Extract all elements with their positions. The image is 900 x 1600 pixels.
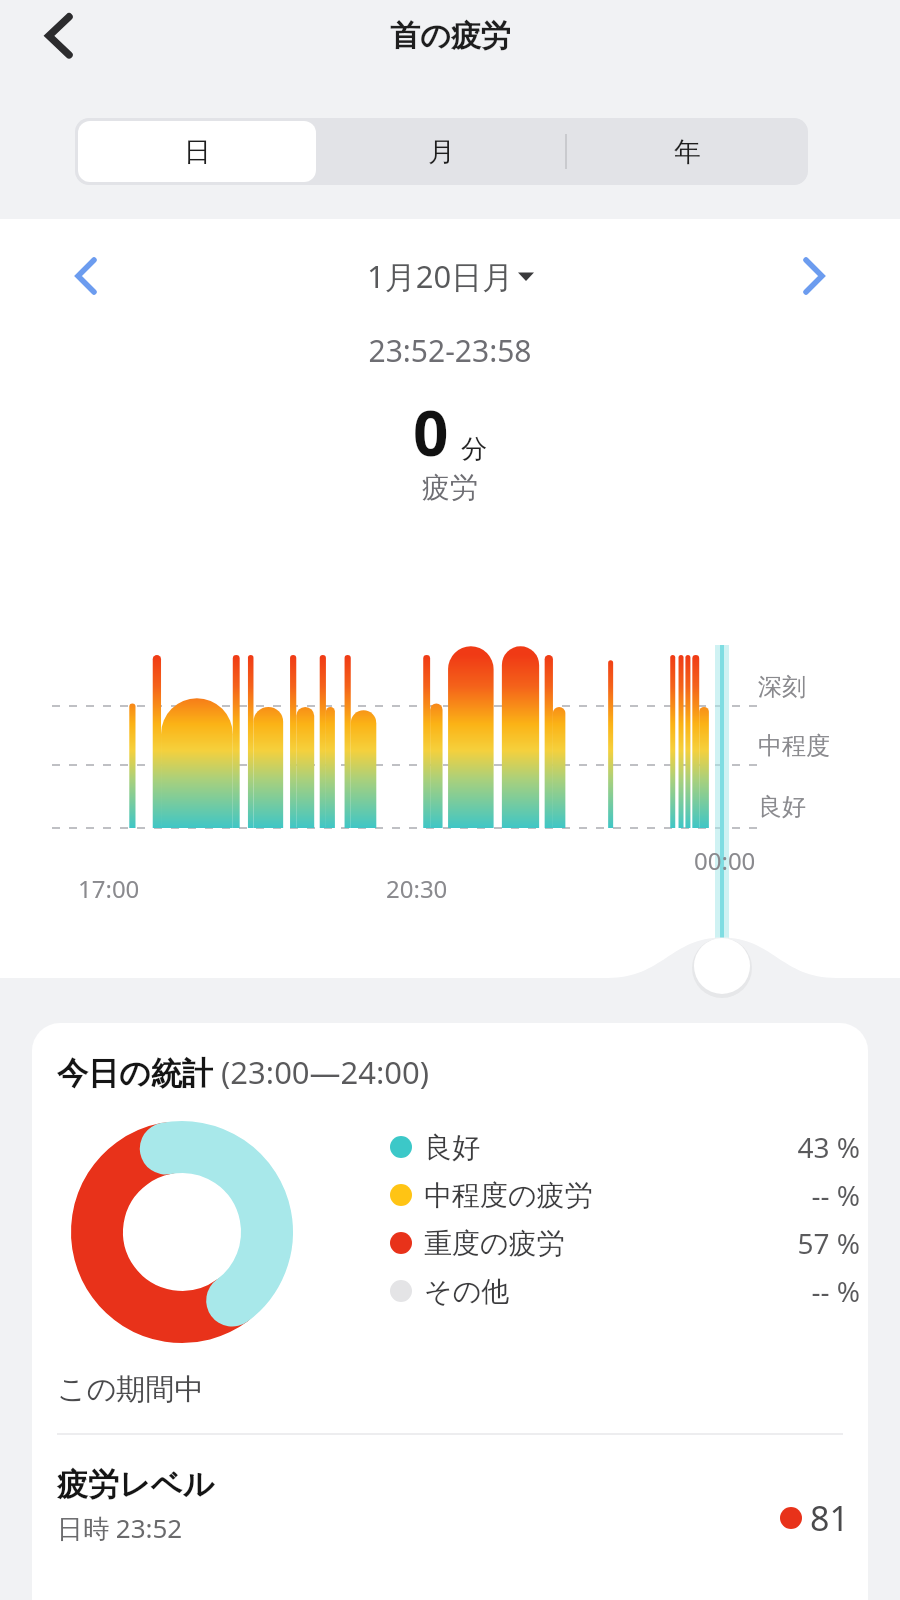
staticText: 年	[674, 135, 701, 169]
staticText: この期間中	[57, 1371, 204, 1408]
staticText: -- %	[811, 1272, 860, 1310]
button[interactable]: Next day	[778, 248, 850, 304]
button[interactable]: 疲労レベル	[32, 1447, 868, 1557]
staticText: 疲労レベル	[57, 1465, 215, 1504]
button[interactable]: 年	[566, 118, 808, 185]
staticText: その他	[424, 1274, 510, 1309]
staticText: 中程度の疲労	[424, 1178, 593, 1213]
staticText: 43 %	[797, 1128, 860, 1166]
staticText: 今日の統計	[57, 1054, 213, 1093]
button[interactable]: 中程度の疲労	[390, 1171, 860, 1219]
button[interactable]: Previous day	[50, 248, 122, 304]
staticText: 疲労	[422, 470, 478, 505]
staticText: 深刻	[758, 672, 806, 702]
staticText: 良好	[758, 792, 806, 822]
staticText: -- %	[811, 1176, 860, 1214]
staticText: 17:00	[78, 872, 140, 905]
staticText: 23:52-23:58	[368, 330, 532, 371]
button[interactable]: Back	[24, 4, 94, 74]
staticText: 20:30	[386, 872, 448, 905]
staticText: 月	[428, 135, 455, 169]
button[interactable]: その他	[390, 1267, 860, 1315]
staticText: 81	[810, 1495, 849, 1541]
staticText: (23:00—24:00)	[213, 1051, 430, 1093]
button[interactable]: 重度の疲労	[390, 1219, 860, 1267]
staticText: 00:00	[694, 844, 756, 877]
staticText: 0	[413, 390, 449, 474]
staticText: 中程度	[758, 731, 830, 761]
button[interactable]: 月	[319, 118, 563, 185]
staticText: 分	[461, 433, 487, 466]
button[interactable]: 良好	[390, 1123, 860, 1171]
staticText: 日	[184, 135, 211, 169]
staticText: 重度の疲労	[424, 1226, 565, 1261]
button[interactable]: 日	[78, 121, 316, 182]
staticText: 首の疲労	[390, 17, 511, 55]
staticText: 57 %	[797, 1224, 860, 1262]
staticText: 良好	[424, 1130, 480, 1165]
staticText: 1月20日月	[367, 255, 514, 297]
staticText: 日時 23:52	[57, 1510, 183, 1546]
